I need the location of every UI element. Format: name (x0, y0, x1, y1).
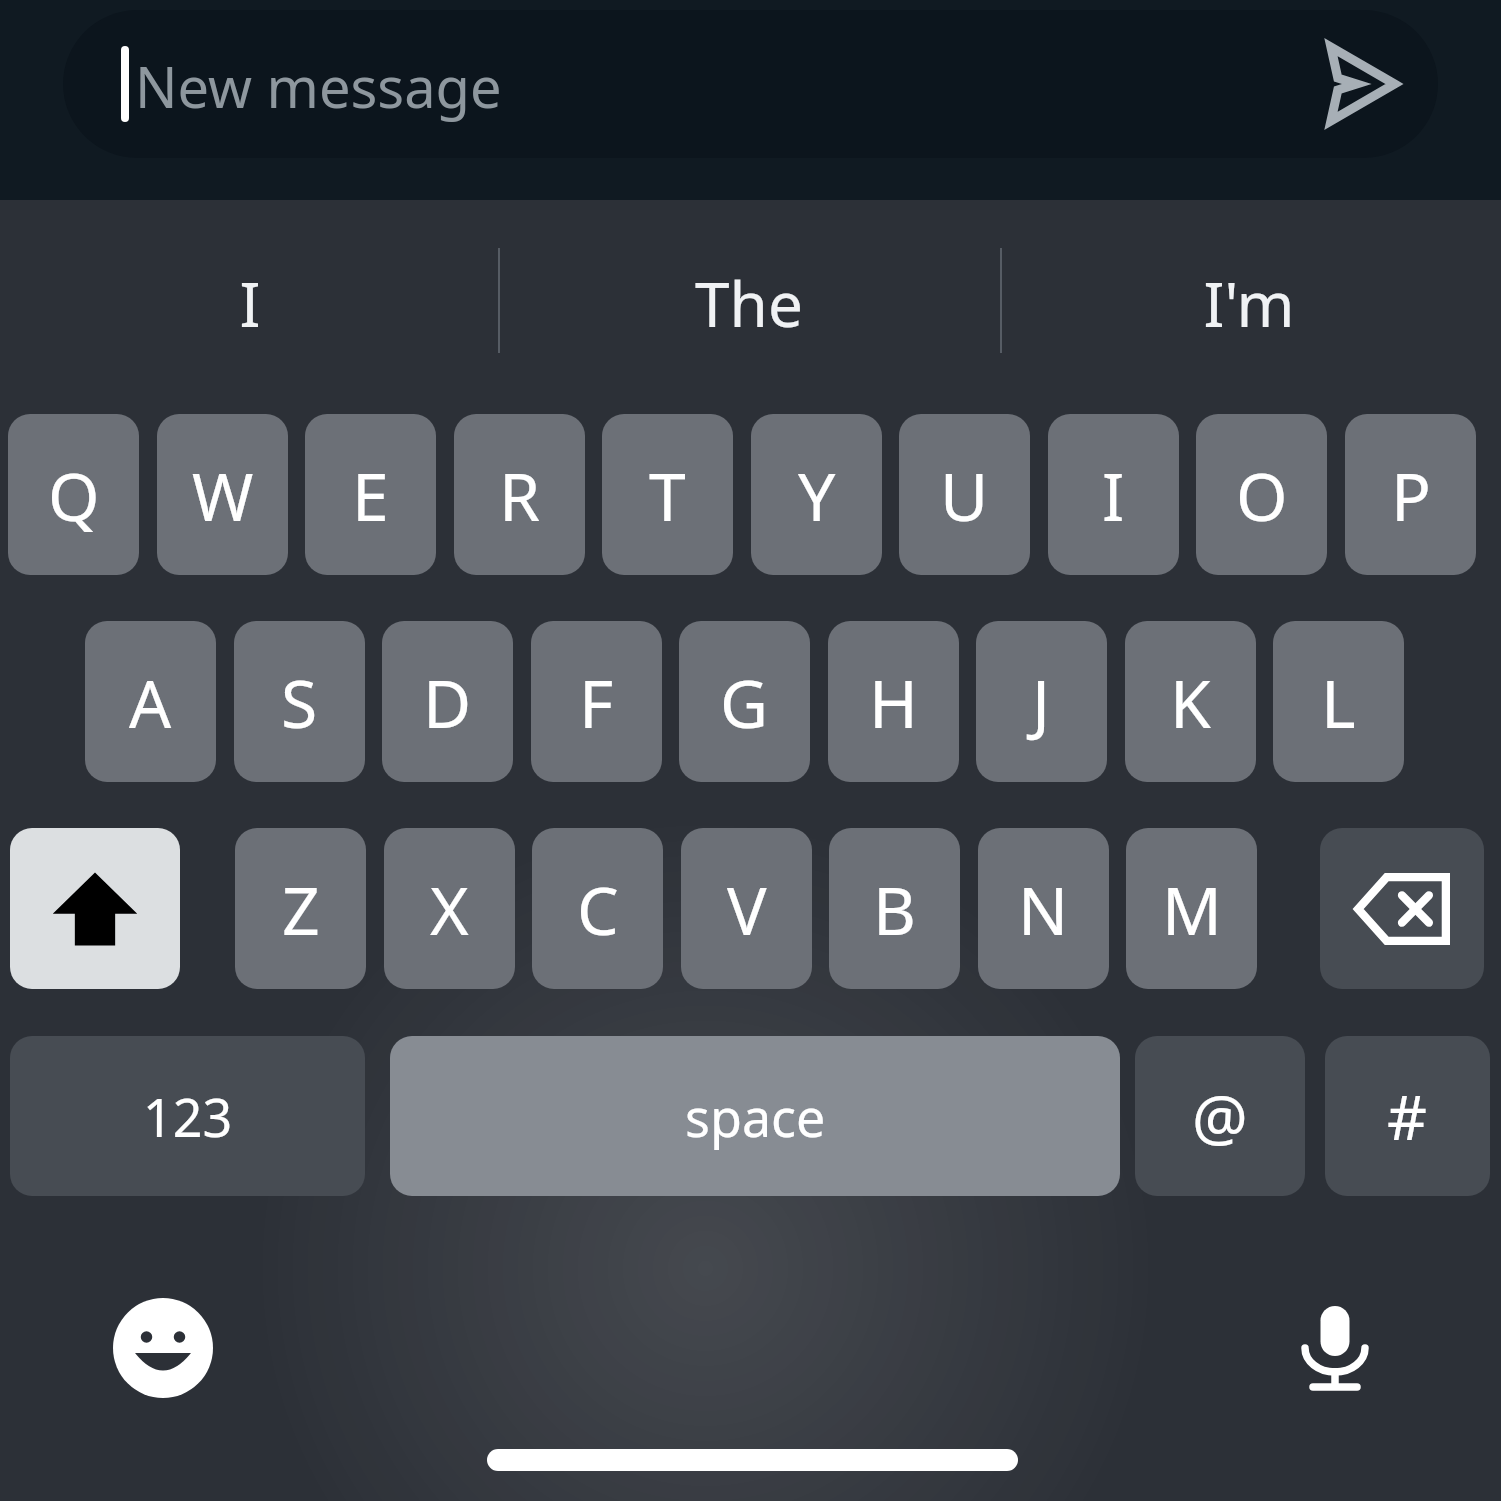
staticText: K (1170, 657, 1211, 747)
button[interactable]: U (899, 414, 1030, 575)
button[interactable]: W (157, 414, 288, 575)
button[interactable]: X (384, 828, 515, 989)
staticText: X (430, 864, 469, 954)
staticText: J (1032, 657, 1051, 747)
button[interactable]: Z (235, 828, 366, 989)
button[interactable]: K (1125, 621, 1256, 782)
button[interactable]: Y (751, 414, 882, 575)
button[interactable]: J (976, 621, 1107, 782)
button[interactable]: H (828, 621, 959, 782)
button[interactable]: B (829, 828, 960, 989)
staticText: E (352, 450, 389, 540)
button[interactable]: T (602, 414, 733, 575)
staticText: U (940, 450, 989, 540)
button[interactable]: O (1196, 414, 1327, 575)
staticText: Y (798, 450, 836, 540)
button[interactable]: # (1325, 1036, 1490, 1196)
staticText: The (695, 261, 803, 345)
button[interactable]: I (30, 200, 470, 405)
button[interactable]: F (531, 621, 662, 782)
button[interactable]: D (382, 621, 513, 782)
staticText: N (1018, 864, 1069, 954)
button[interactable]: Send (1300, 29, 1410, 139)
staticText: 123 (143, 1081, 233, 1152)
button[interactable]: Shift (10, 828, 180, 989)
staticText: F (579, 657, 614, 747)
button[interactable]: The (529, 200, 969, 405)
staticText: A (129, 657, 172, 747)
button[interactable]: M (1126, 828, 1257, 989)
button[interactable]: 123 (10, 1036, 365, 1196)
staticText: D (423, 657, 472, 747)
button[interactable]: @ (1135, 1036, 1305, 1196)
button[interactable]: I (1048, 414, 1179, 575)
button[interactable]: P (1345, 414, 1476, 575)
staticText: I'm (1203, 261, 1295, 345)
button[interactable]: G (679, 621, 810, 782)
button[interactable]: A (85, 621, 216, 782)
staticText: H (869, 657, 918, 747)
staticText: P (1391, 450, 1431, 540)
staticText: W (192, 450, 254, 540)
staticText: Q (48, 450, 100, 540)
staticText: L (1321, 657, 1356, 747)
button[interactable]: L (1273, 621, 1404, 782)
button[interactable]: New message (63, 10, 1438, 158)
button[interactable]: Backspace (1320, 828, 1484, 989)
staticText: I (239, 261, 261, 345)
button[interactable]: Emoji (103, 1288, 223, 1408)
staticText: @ (1192, 1074, 1248, 1158)
button[interactable]: S (234, 621, 365, 782)
button[interactable]: Voice input (1275, 1288, 1395, 1408)
staticText: R (499, 450, 541, 540)
staticText: space (685, 1081, 826, 1152)
staticText: T (649, 450, 686, 540)
staticText: C (577, 864, 619, 954)
button[interactable]: R (454, 414, 585, 575)
button[interactable]: E (305, 414, 436, 575)
staticText: New message (135, 48, 502, 124)
staticText: V (727, 864, 767, 954)
button[interactable]: space (390, 1036, 1120, 1196)
staticText: O (1236, 450, 1288, 540)
staticText: B (873, 864, 916, 954)
staticText: Z (282, 864, 320, 954)
button[interactable]: V (681, 828, 812, 989)
button[interactable]: Q (8, 414, 139, 575)
button[interactable]: I'm (1029, 200, 1469, 405)
staticText: M (1162, 864, 1222, 954)
button[interactable]: C (532, 828, 663, 989)
staticText: I (1102, 450, 1125, 540)
staticText: S (281, 657, 318, 747)
staticText: # (1387, 1074, 1428, 1158)
staticText: G (720, 657, 769, 747)
button[interactable]: N (978, 828, 1109, 989)
